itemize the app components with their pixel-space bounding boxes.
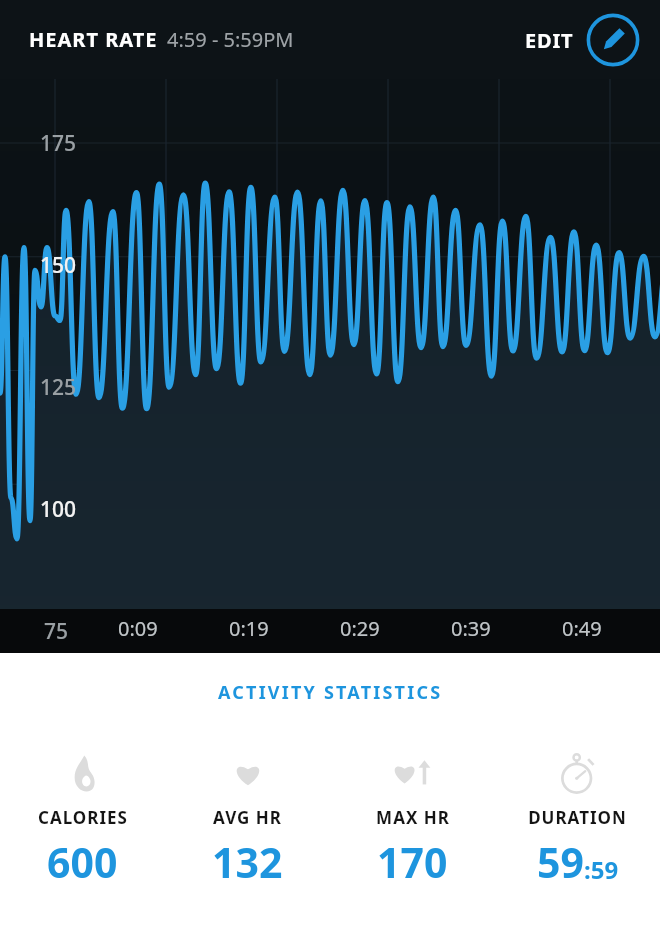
staticText: 75	[44, 617, 69, 646]
staticText: 59	[537, 834, 584, 890]
button[interactable]: CALORIES	[0, 751, 165, 890]
staticText: AVG HR	[213, 806, 282, 829]
staticText: DURATION	[528, 806, 627, 829]
button[interactable]: EDIT	[525, 13, 640, 67]
staticText: CALORIES	[38, 806, 128, 829]
staticText: 0:29	[340, 615, 380, 642]
staticText: MAX HR	[376, 806, 450, 829]
staticText: 4:59 - 5:59PM	[167, 26, 294, 53]
staticText: 0:19	[229, 615, 269, 642]
staticText: 0:09	[118, 615, 158, 642]
staticText: 125	[40, 373, 77, 402]
staticText: 600	[47, 834, 118, 890]
staticText: 175	[40, 129, 77, 158]
staticText: HEART RATE	[29, 26, 158, 53]
staticText: 0:39	[451, 615, 491, 642]
button[interactable]: MAX HR	[330, 751, 495, 890]
staticText: EDIT	[525, 27, 574, 54]
staticText: ACTIVITY STATISTICS	[218, 680, 443, 705]
staticText: 170	[377, 834, 448, 890]
staticText: 0:49	[562, 615, 602, 642]
staticText: 150	[40, 251, 77, 280]
other: Edit	[586, 13, 640, 67]
staticText: 100	[40, 495, 77, 524]
button[interactable]: DURATION	[495, 751, 660, 890]
button[interactable]: AVG HR	[165, 751, 330, 890]
staticText: :59	[584, 853, 619, 886]
staticText: 132	[212, 834, 283, 890]
